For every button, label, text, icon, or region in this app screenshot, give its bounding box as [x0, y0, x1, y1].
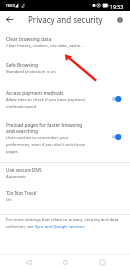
button[interactable]: Use secure DNS [0, 163, 130, 185]
button[interactable]: Recents [93, 255, 111, 270]
staticText: 19:53 [110, 3, 124, 10]
button[interactable]: Access payment methods [0, 84, 130, 112]
staticText: Clear browsing data [6, 36, 52, 43]
button[interactable]: Toggle on [111, 92, 125, 106]
staticText: Allow sites to check if you have payment… [6, 97, 86, 109]
button[interactable]: 'Do Not Track' [0, 186, 130, 208]
staticText: Use secure DNS [6, 167, 42, 174]
staticText: Preload pages for faster browsing and se… [6, 122, 83, 134]
button[interactable]: Toggle on [111, 130, 125, 144]
staticText: Clear history, cookies, site data, cache… [6, 43, 84, 49]
staticText: For more settings that relate to privacy… [6, 217, 124, 230]
staticText: Standard protection is on [6, 69, 56, 75]
button[interactable]: Home [56, 255, 74, 270]
staticText: Safe Browsing [6, 62, 38, 69]
staticText: Privacy and security [28, 14, 103, 25]
staticText: TESCO [6, 4, 15, 8]
button[interactable]: Help and feedback [113, 13, 127, 27]
staticText: Automatic [6, 174, 27, 180]
staticText: Access payment methods [6, 90, 64, 97]
button[interactable]: Safe Browsing [0, 56, 130, 79]
staticText: On [6, 197, 12, 203]
button[interactable]: Back [19, 255, 37, 270]
staticText: 'Do Not Track' [6, 190, 38, 197]
button[interactable]: Clear browsing data [0, 30, 130, 53]
button[interactable]: Navigate back [1, 11, 18, 28]
staticText: Uses cookies to remember your preference… [6, 135, 86, 154]
button[interactable]: Preload pages for faster browsing and se… [0, 116, 130, 158]
